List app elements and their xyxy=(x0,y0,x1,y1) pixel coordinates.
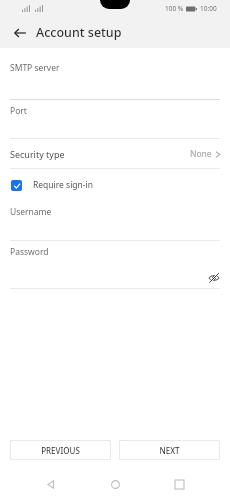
staticText: Account setup xyxy=(36,24,122,41)
button[interactable]: Port xyxy=(0,100,230,139)
staticText: Security type xyxy=(10,148,65,160)
staticText: NEXT xyxy=(159,445,180,456)
button[interactable]: SMTP server xyxy=(0,57,230,100)
button[interactable]: Require sign-in xyxy=(0,169,230,201)
staticText: Password xyxy=(10,246,49,258)
staticText: None xyxy=(190,148,212,160)
button[interactable]: Back xyxy=(9,22,31,44)
staticText: 10:00 xyxy=(200,4,217,13)
button[interactable]: Back xyxy=(38,471,64,497)
button[interactable]: Recents xyxy=(166,471,192,497)
staticText: 100 % xyxy=(165,4,184,13)
button[interactable]: Home xyxy=(102,471,128,497)
staticText: Port xyxy=(10,105,27,117)
button[interactable]: Back xyxy=(0,17,230,48)
staticText: PREVIOUS xyxy=(41,445,80,456)
button[interactable]: Password xyxy=(0,241,230,289)
button[interactable]: Username xyxy=(0,201,230,241)
button[interactable]: Security type xyxy=(0,139,230,169)
button[interactable]: PREVIOUS xyxy=(10,440,111,460)
button[interactable]: Show password xyxy=(206,270,222,286)
button[interactable]: NEXT xyxy=(119,440,220,460)
staticText: Username xyxy=(10,206,52,218)
staticText: Require sign-in xyxy=(33,179,94,191)
staticText: SMTP server xyxy=(10,62,60,74)
